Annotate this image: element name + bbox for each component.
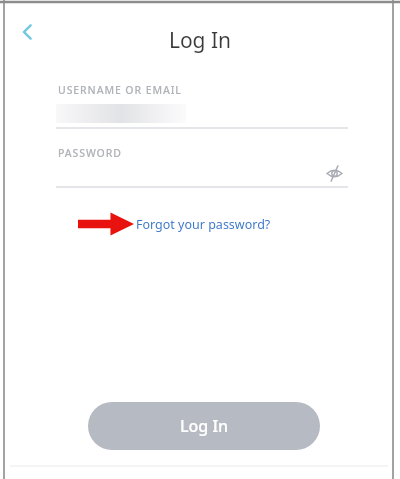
button[interactable]	[56, 104, 186, 123]
staticText: Log In	[180, 415, 229, 437]
staticText: Log In	[0, 26, 400, 55]
button[interactable]: Log In	[88, 402, 320, 450]
button[interactable]: Show password	[320, 160, 348, 186]
staticText: PASSWORD	[58, 146, 122, 160]
button[interactable]: Back	[8, 12, 48, 52]
staticText: USERNAME OR EMAIL	[58, 83, 182, 97]
staticText: Forgot your password?	[136, 216, 271, 233]
button[interactable]: Forgot your password?	[136, 216, 271, 233]
